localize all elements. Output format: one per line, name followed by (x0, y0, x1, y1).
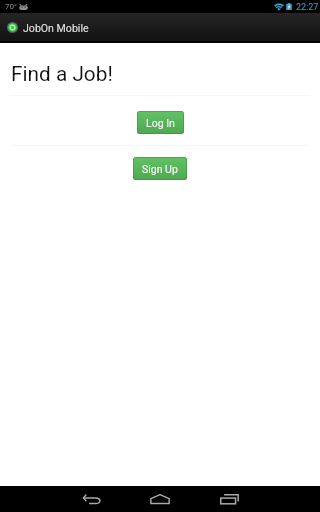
button[interactable]: Sign Up (133, 157, 187, 180)
staticText: 22:27 (296, 2, 319, 13)
staticText: Find a Job! (11, 62, 113, 86)
button[interactable]: Home (136, 486, 184, 512)
button[interactable]: Recent apps (205, 486, 253, 512)
button[interactable]: Log In (137, 111, 184, 134)
staticText: Log In (146, 117, 175, 129)
staticText: Sign Up (142, 163, 178, 175)
staticText: 70° (5, 2, 17, 11)
button[interactable]: Back (68, 486, 116, 512)
staticText: JobOn Mobile (23, 22, 89, 34)
